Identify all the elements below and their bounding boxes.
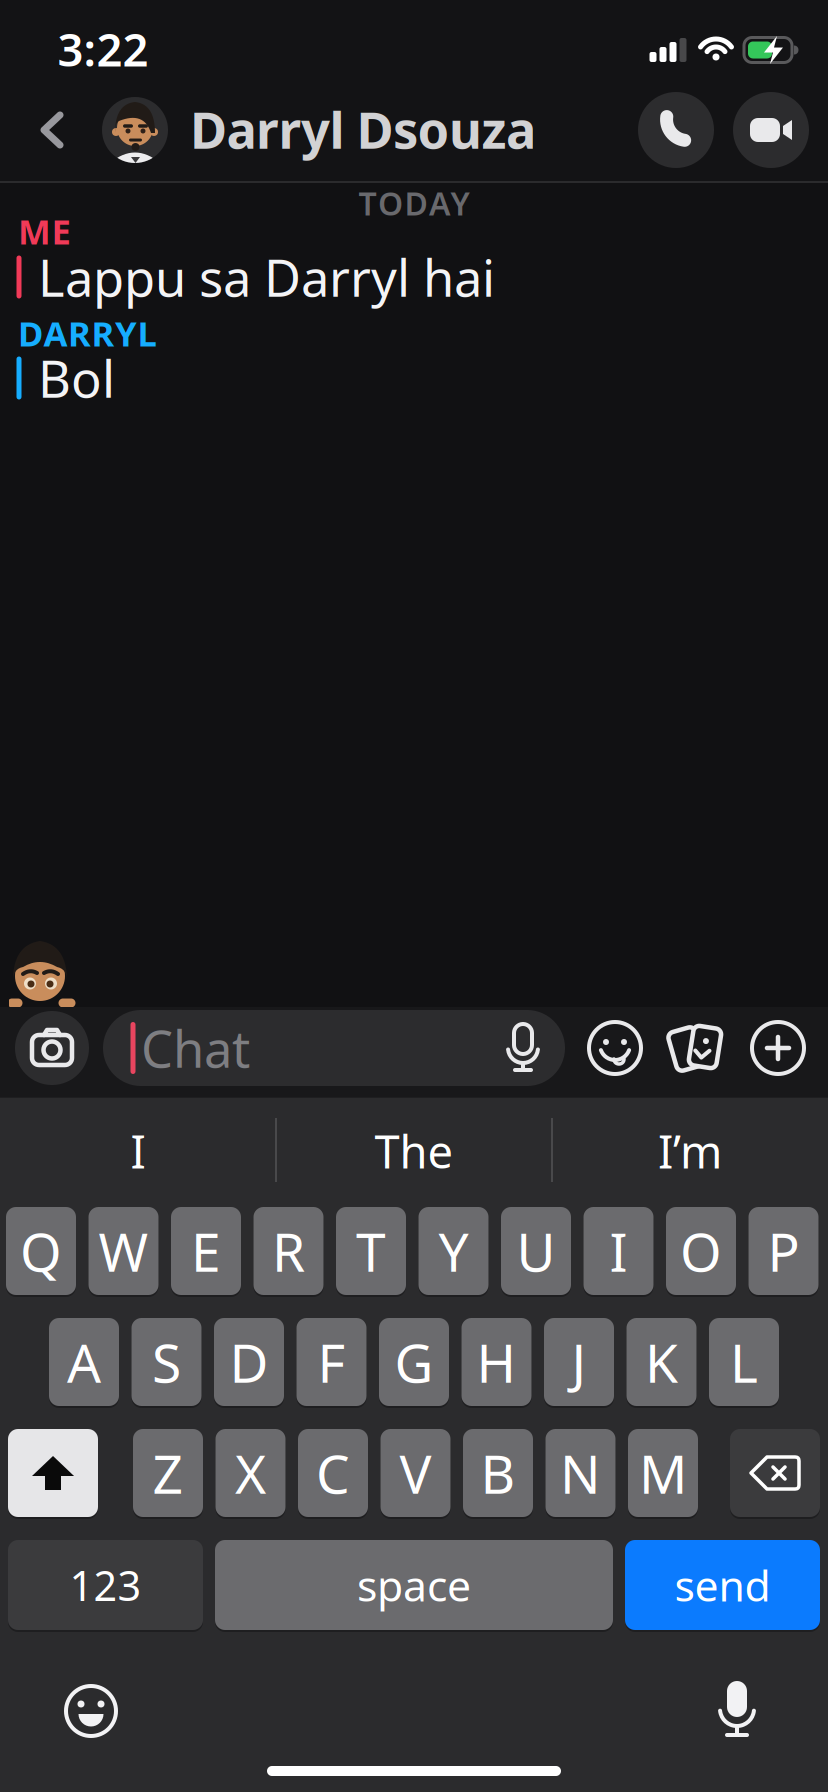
staticText: K bbox=[645, 1327, 678, 1397]
staticText: E bbox=[191, 1216, 221, 1286]
button[interactable]: M bbox=[628, 1429, 698, 1517]
staticText: 123 bbox=[69, 1558, 141, 1612]
button[interactable]: I bbox=[583, 1207, 653, 1295]
button[interactable]: P bbox=[748, 1207, 818, 1295]
button[interactable]: U bbox=[501, 1207, 571, 1295]
button[interactable]: G bbox=[379, 1318, 449, 1406]
staticText: Lappu sa Darryl hai bbox=[38, 243, 495, 311]
button[interactable]: space bbox=[215, 1540, 613, 1630]
staticText: D bbox=[229, 1327, 268, 1397]
button[interactable]: Q bbox=[6, 1207, 76, 1295]
button[interactable]: Memories bbox=[668, 1021, 726, 1075]
staticText: J bbox=[571, 1327, 586, 1397]
button[interactable]: H bbox=[461, 1318, 531, 1406]
staticText: N bbox=[560, 1438, 601, 1508]
button[interactable]: Shift bbox=[8, 1429, 98, 1517]
button[interactable]: N bbox=[545, 1429, 615, 1517]
staticText: P bbox=[767, 1216, 799, 1286]
staticText: S bbox=[152, 1327, 181, 1397]
staticText: L bbox=[730, 1327, 758, 1397]
staticText: B bbox=[480, 1438, 515, 1508]
button[interactable]: T bbox=[336, 1207, 406, 1295]
staticText: I bbox=[130, 1121, 145, 1181]
button[interactable]: C bbox=[298, 1429, 368, 1517]
staticText: F bbox=[317, 1327, 345, 1397]
staticText: The bbox=[374, 1121, 453, 1181]
button[interactable]: Chat text field bbox=[103, 1010, 565, 1086]
staticText: R bbox=[272, 1216, 305, 1286]
staticText: 3:22 bbox=[57, 19, 148, 79]
button[interactable]: O bbox=[666, 1207, 736, 1295]
button[interactable]: A bbox=[49, 1318, 119, 1406]
button[interactable]: K bbox=[626, 1318, 696, 1406]
button[interactable]: I’m bbox=[555, 1116, 825, 1186]
button[interactable]: Back bbox=[40, 111, 66, 149]
button[interactable]: Delete bbox=[730, 1429, 820, 1517]
staticText: O bbox=[680, 1216, 722, 1286]
staticText: I bbox=[609, 1216, 627, 1286]
button[interactable]: S bbox=[131, 1318, 201, 1406]
staticText: send bbox=[674, 1557, 770, 1613]
button[interactable]: B bbox=[463, 1429, 533, 1517]
staticText: Y bbox=[438, 1216, 468, 1286]
staticText: X bbox=[235, 1438, 266, 1508]
button[interactable]: Voice message bbox=[504, 1023, 542, 1073]
staticText: space bbox=[357, 1557, 471, 1613]
staticText: Z bbox=[152, 1438, 183, 1508]
button[interactable]: Y bbox=[418, 1207, 488, 1295]
staticText: W bbox=[98, 1216, 148, 1286]
staticText: ME bbox=[18, 208, 70, 254]
button[interactable]: Video call bbox=[733, 92, 809, 168]
button[interactable]: F bbox=[296, 1318, 366, 1406]
button[interactable]: V bbox=[380, 1429, 450, 1517]
staticText: M bbox=[639, 1438, 687, 1508]
button[interactable]: More bbox=[751, 1021, 805, 1075]
button[interactable]: Dictation bbox=[717, 1679, 757, 1737]
staticText: Bol bbox=[38, 344, 115, 412]
button[interactable]: Emoji bbox=[66, 1686, 116, 1736]
staticText: T bbox=[356, 1216, 386, 1286]
button[interactable]: Call bbox=[638, 92, 714, 168]
button[interactable]: W bbox=[88, 1207, 158, 1295]
button[interactable]: Stickers bbox=[588, 1021, 642, 1075]
staticText: A bbox=[67, 1327, 101, 1397]
staticText: Chat bbox=[141, 1014, 250, 1082]
button[interactable]: R bbox=[253, 1207, 323, 1295]
button[interactable]: D bbox=[214, 1318, 284, 1406]
staticText: Q bbox=[20, 1216, 62, 1286]
button[interactable]: The bbox=[279, 1116, 549, 1186]
button[interactable]: J bbox=[544, 1318, 614, 1406]
staticText: I’m bbox=[658, 1121, 722, 1181]
staticText: DARRYL bbox=[18, 310, 156, 356]
staticText: TODAY bbox=[358, 182, 469, 224]
button[interactable]: I bbox=[3, 1116, 273, 1186]
button[interactable]: E bbox=[171, 1207, 241, 1295]
button[interactable]: send bbox=[625, 1540, 820, 1630]
staticText: Darryl Dsouza bbox=[190, 95, 536, 163]
staticText: U bbox=[516, 1216, 555, 1286]
button[interactable]: Darryl Dsouza profile bbox=[102, 97, 168, 163]
button[interactable]: L bbox=[709, 1318, 779, 1406]
staticText: C bbox=[316, 1438, 350, 1508]
staticText: V bbox=[399, 1438, 431, 1508]
staticText: G bbox=[394, 1327, 433, 1397]
button[interactable]: 123 bbox=[8, 1540, 203, 1630]
button[interactable]: Z bbox=[133, 1429, 203, 1517]
staticText: H bbox=[476, 1327, 516, 1397]
button[interactable]: Camera bbox=[15, 1011, 89, 1085]
button[interactable]: X bbox=[215, 1429, 285, 1517]
